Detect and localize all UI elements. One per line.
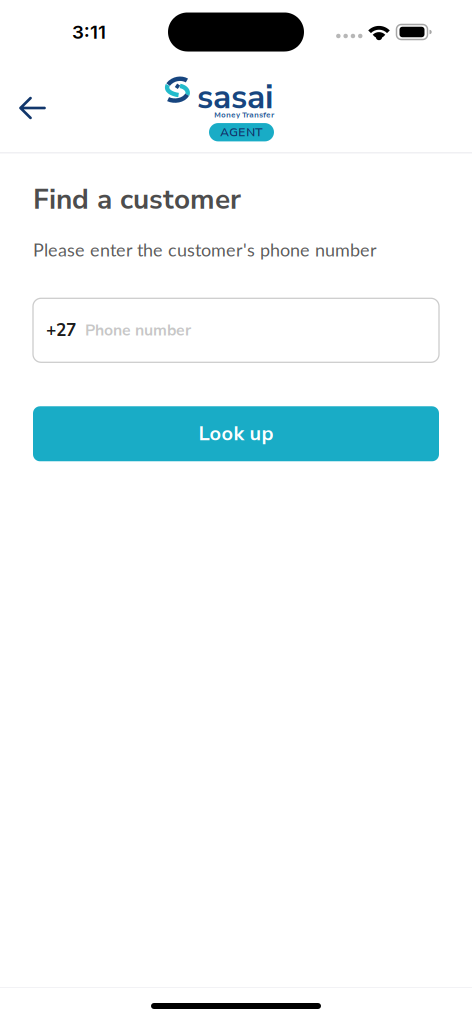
staticText: Money Transfer [214,110,274,120]
button[interactable]: Back [0,79,62,136]
staticText: sasai [197,75,274,120]
staticText: Phone number [85,320,191,341]
staticText: Find a customer [33,180,241,219]
staticText: Please enter the customer's phone number [33,239,377,260]
staticText: AGENT [220,124,263,140]
button[interactable]: Look up [33,406,439,461]
staticText: 3:11 [72,21,106,43]
button[interactable]: AGENT [209,123,274,141]
staticText: Look up [198,420,273,447]
staticText: +27 [46,318,76,342]
